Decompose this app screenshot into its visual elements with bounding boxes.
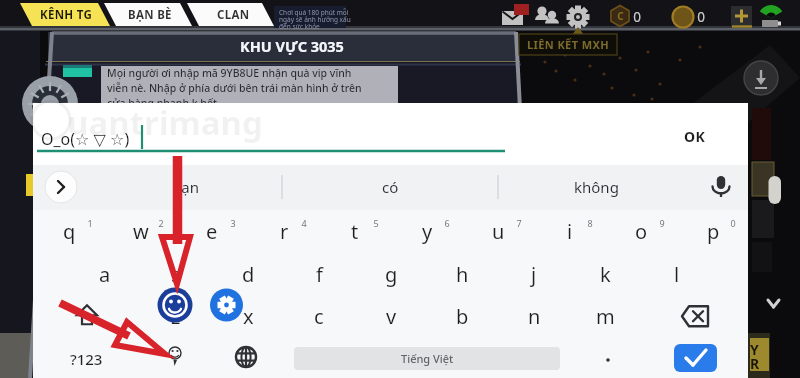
button[interactable]: j: [498, 253, 570, 296]
staticText: l: [674, 261, 680, 288]
button[interactable]: ?123: [50, 340, 122, 378]
staticText: OK: [684, 127, 706, 146]
staticText: w: [133, 218, 149, 245]
staticText: bạn: [172, 177, 199, 197]
staticText: h: [456, 261, 469, 288]
staticText: 0: [697, 8, 705, 26]
staticText: không: [574, 177, 619, 197]
button[interactable]: n: [498, 295, 570, 338]
staticText: 3: [230, 217, 236, 229]
button[interactable]: r: [248, 210, 320, 253]
button[interactable]: u: [462, 210, 534, 253]
staticText: CLAN: [217, 7, 250, 23]
staticText: 6: [444, 217, 450, 229]
staticText: e: [206, 218, 218, 245]
button[interactable]: v: [355, 295, 427, 338]
button[interactable]: p: [677, 210, 749, 253]
staticText: n: [528, 303, 541, 330]
button[interactable]: d: [212, 253, 284, 296]
staticText: 0: [730, 217, 736, 229]
button[interactable]: s: [140, 253, 212, 296]
staticText: f: [316, 261, 323, 288]
staticText: C: [617, 9, 624, 23]
staticText: Tiếng Việt: [401, 351, 454, 366]
staticText: p: [707, 218, 720, 245]
staticText: KÊNH TG: [40, 7, 93, 23]
button[interactable]: a: [69, 253, 141, 296]
button[interactable]: Collapse: [760, 291, 787, 316]
staticText: viễn nè. Nhập ở phía dưới bên trái màn h…: [107, 81, 362, 95]
button[interactable]: Tiếng Việt: [294, 347, 560, 370]
button[interactable]: bạn: [90, 168, 280, 206]
button[interactable]: w: [105, 210, 177, 253]
staticText: s: [171, 261, 181, 288]
staticText: Chơi quá 180 phút mỗi: [279, 8, 349, 17]
button[interactable]: f: [283, 253, 355, 296]
button[interactable]: x: [212, 295, 284, 338]
button[interactable]: OK: [665, 118, 725, 154]
button[interactable]: Emoji: [150, 340, 200, 378]
staticText: v: [386, 303, 397, 330]
staticText: ?123: [70, 349, 103, 369]
button[interactable]: Backspace: [641, 295, 748, 338]
button[interactable]: k: [569, 253, 641, 296]
button[interactable]: m: [569, 295, 641, 338]
button[interactable]: Friends: [534, 2, 564, 32]
button[interactable]: e: [176, 210, 248, 253]
staticText: 5: [373, 217, 379, 229]
staticText: cửa hàng nhanh k hết: [107, 96, 217, 110]
button[interactable]: Period: [585, 340, 633, 378]
staticText: o: [635, 218, 648, 245]
staticText: ngày sẽ ảnh hưởng xấu: [279, 15, 351, 24]
button[interactable]: BẠN BÈ: [110, 3, 190, 26]
button[interactable]: q: [33, 210, 105, 253]
staticText: KHU VỰC 3035: [240, 36, 344, 56]
button[interactable]: l: [641, 253, 713, 296]
button[interactable]: b: [426, 295, 498, 338]
button[interactable]: h: [426, 253, 498, 296]
button[interactable]: KÊNH TG: [25, 3, 107, 26]
staticText: m: [596, 303, 615, 330]
button[interactable]: Voice input: [705, 171, 737, 203]
staticText: 2: [158, 217, 164, 229]
staticText: Mọi người ơi nhập mã 9YB8UE nhận quà vip…: [107, 66, 352, 80]
button[interactable]: Shift: [33, 295, 140, 338]
staticText: b: [456, 303, 469, 330]
staticText: i: [567, 218, 573, 245]
staticText: 8: [587, 217, 593, 229]
button[interactable]: g: [355, 253, 427, 296]
staticText: 9: [659, 217, 665, 229]
button[interactable]: Download: [744, 61, 778, 95]
button[interactable]: Mail: [498, 2, 534, 32]
button[interactable]: i: [534, 210, 606, 253]
staticText: q: [63, 218, 76, 245]
button[interactable]: Add currency: [729, 4, 754, 29]
staticText: r: [280, 218, 289, 245]
staticText: u: [492, 218, 505, 245]
button[interactable]: t: [319, 210, 391, 253]
button[interactable]: o: [605, 210, 677, 253]
staticText: z: [171, 303, 181, 330]
button[interactable]: không: [500, 168, 692, 206]
staticText: 4: [301, 217, 307, 229]
staticText: x: [243, 303, 254, 330]
staticText: Y: [750, 340, 759, 359]
button[interactable]: z: [140, 295, 212, 338]
staticText: LIÊN KẾT MXH: [527, 37, 610, 52]
staticText: k: [600, 261, 611, 288]
staticText: 0: [633, 8, 641, 26]
button[interactable]: Change language: [220, 340, 270, 378]
staticText: g: [385, 261, 398, 288]
button[interactable]: CLAN: [193, 3, 273, 26]
button[interactable]: có: [285, 168, 495, 206]
staticText: R: [750, 354, 760, 373]
staticText: a: [99, 261, 111, 288]
staticText: 1: [87, 217, 93, 229]
button[interactable]: LIÊN KẾT MXH: [519, 34, 617, 55]
button[interactable]: More suggestions: [45, 171, 77, 203]
button[interactable]: Enter: [674, 344, 717, 372]
button[interactable]: y: [391, 210, 463, 253]
button[interactable]: c: [283, 295, 355, 338]
staticText: BẠN BÈ: [128, 7, 172, 23]
button[interactable]: Settings: [564, 2, 594, 32]
